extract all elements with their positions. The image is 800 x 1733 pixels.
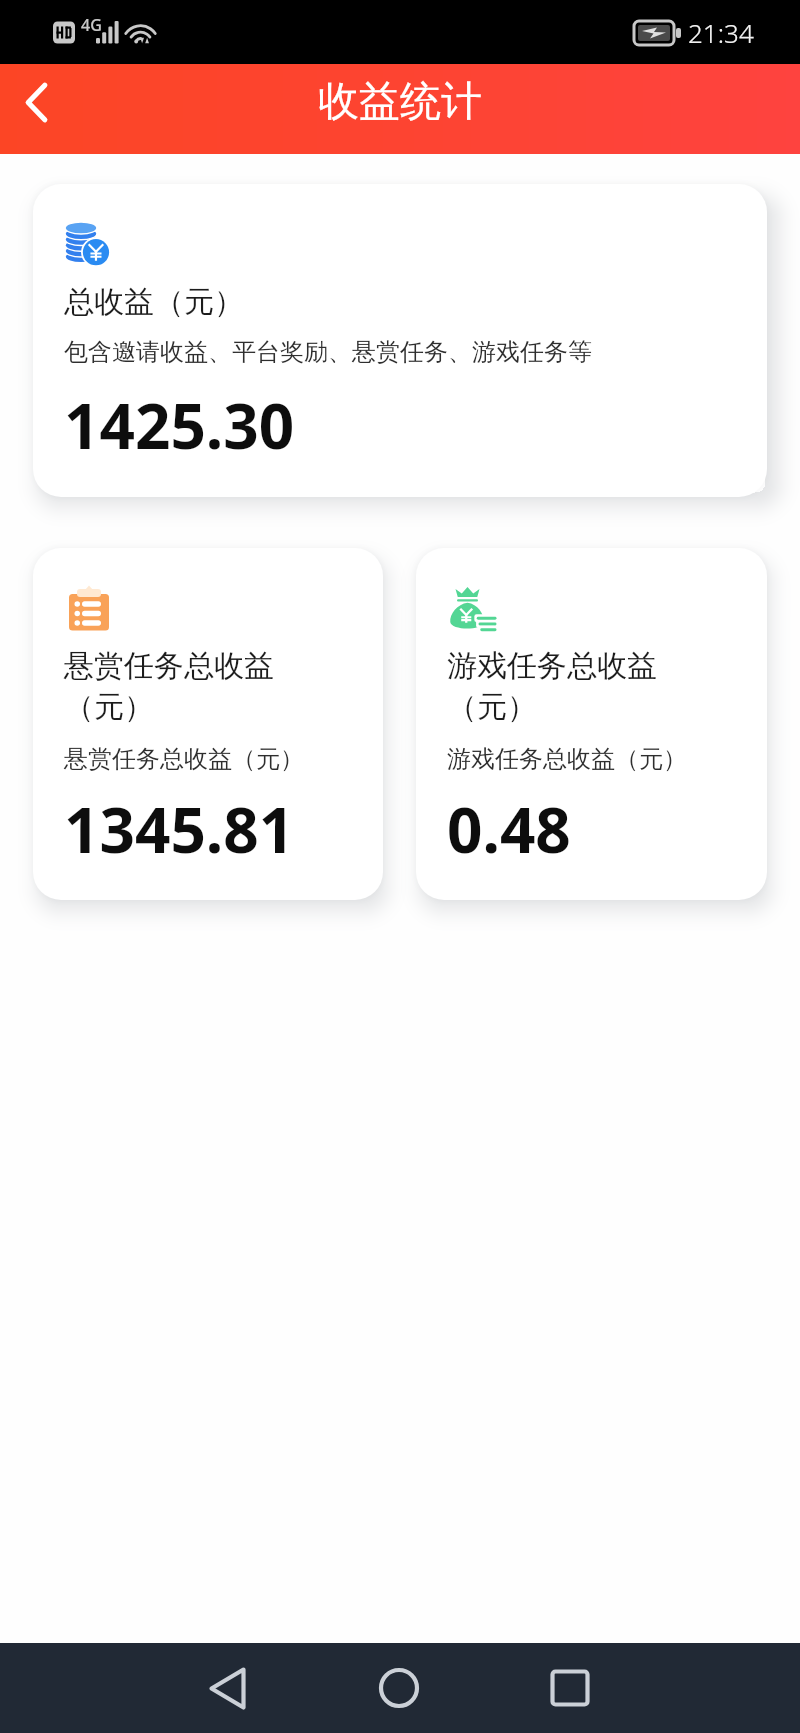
staticText: 总收益（元） bbox=[64, 283, 244, 321]
staticText: 悬赏任务总收益 （元） bbox=[64, 647, 274, 726]
staticText: 游戏任务总收益 （元） bbox=[447, 647, 657, 726]
staticText: 包含邀请收益、平台奖励、悬赏任务、游戏任务等 bbox=[64, 337, 592, 367]
staticText: 4G bbox=[81, 14, 102, 36]
staticText: 0.48 bbox=[447, 787, 571, 871]
button[interactable]: 总收益（元） bbox=[33, 184, 767, 497]
staticText: 21:34 bbox=[688, 15, 754, 50]
staticText: 1425.30 bbox=[64, 383, 295, 467]
button[interactable]: Back bbox=[0, 64, 72, 140]
staticText: 收益统计 bbox=[318, 76, 482, 128]
staticText: 游戏任务总收益（元） bbox=[447, 744, 687, 774]
staticText: 1345.81 bbox=[64, 787, 295, 871]
button[interactable]: Home bbox=[313, 1643, 484, 1733]
button[interactable]: 游戏任务总收益 （元） bbox=[416, 548, 767, 900]
button[interactable]: Recent apps bbox=[484, 1643, 655, 1733]
button[interactable]: 悬赏任务总收益 （元） bbox=[33, 548, 383, 900]
staticText: 悬赏任务总收益（元） bbox=[64, 744, 304, 774]
button[interactable]: Back bbox=[142, 1643, 313, 1733]
